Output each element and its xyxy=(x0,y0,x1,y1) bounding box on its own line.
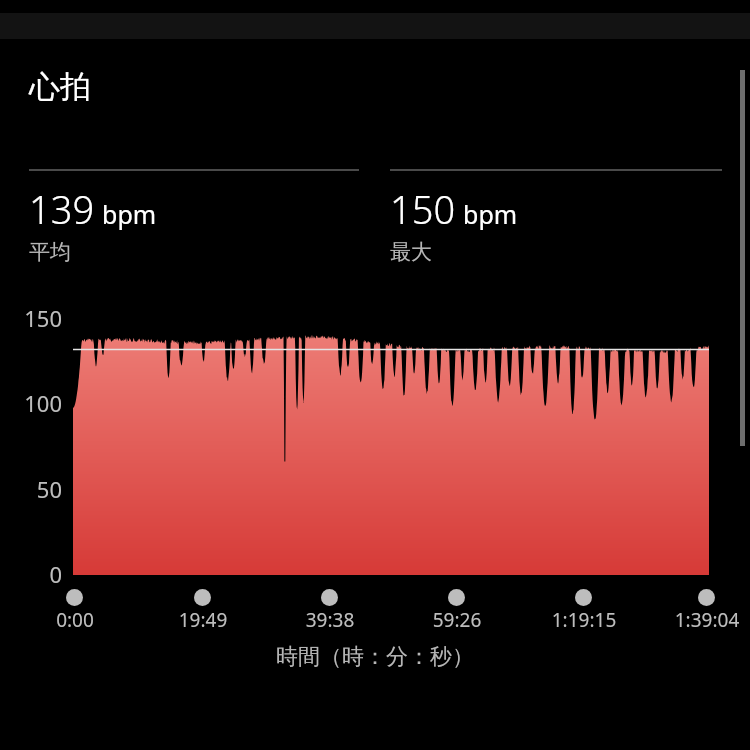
other: Time marker 39:38 xyxy=(321,589,338,606)
staticText: 100 xyxy=(0,388,62,418)
staticText: 時間（時：分：秒） xyxy=(0,643,750,671)
other: Time marker 1:19:15 xyxy=(575,589,592,606)
staticText: 59:26 xyxy=(397,607,517,633)
staticText: 心拍 xyxy=(29,67,91,106)
other: Time marker 19:49 xyxy=(194,589,211,606)
staticText: 50 xyxy=(0,474,62,504)
staticText: 1:19:15 xyxy=(524,607,644,633)
staticText: bpm xyxy=(102,197,157,231)
staticText: 0 xyxy=(0,559,62,589)
staticText: 平均 xyxy=(29,239,71,265)
staticText: 1:39:04 xyxy=(647,607,750,633)
button[interactable]: 139 xyxy=(29,183,329,265)
staticText: 150 xyxy=(390,183,456,235)
staticText: 最大 xyxy=(390,239,432,265)
staticText: 39:38 xyxy=(270,607,390,633)
staticText: bpm xyxy=(463,197,518,231)
staticText: 19:49 xyxy=(143,607,263,633)
staticText: 0:00 xyxy=(15,607,135,633)
button[interactable]: 150 xyxy=(390,183,690,265)
staticText: 139 xyxy=(29,183,95,235)
other: Time marker 1:39:04 xyxy=(698,589,715,606)
other: Time marker 59:26 xyxy=(448,589,465,606)
staticText: 150 xyxy=(0,303,62,333)
button[interactable]: 心拍 xyxy=(29,67,91,106)
other: Time marker 0:00 xyxy=(66,589,83,606)
